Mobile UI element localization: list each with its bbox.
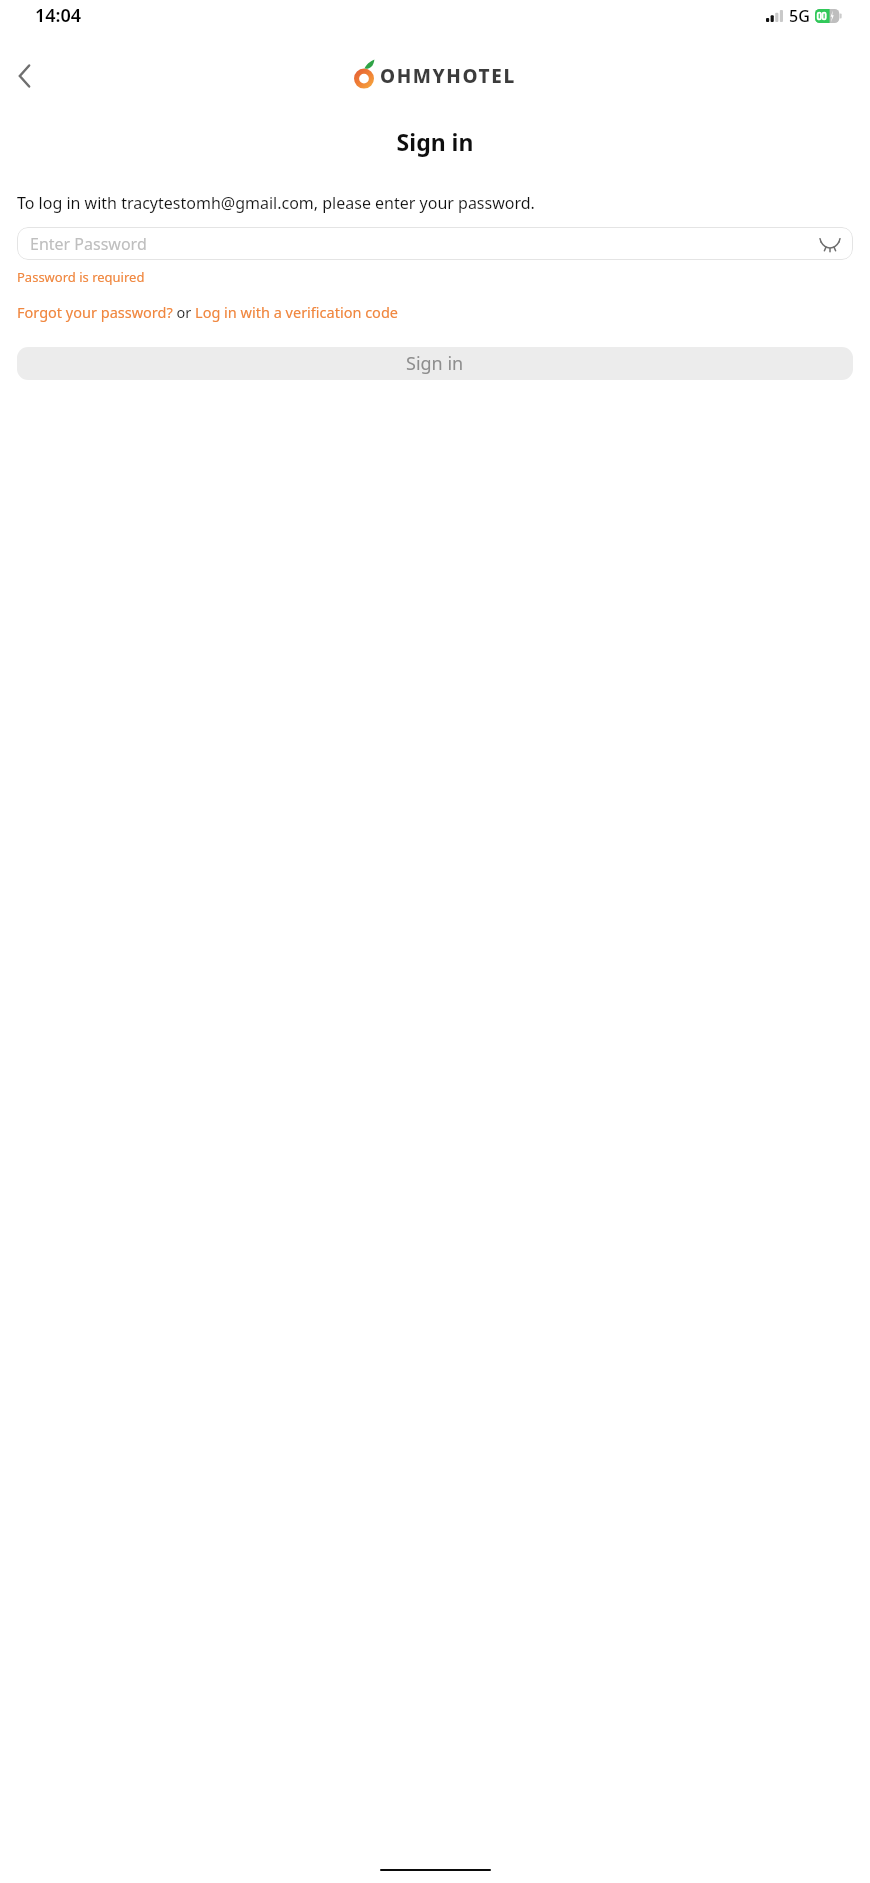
button[interactable]: Back (4, 56, 44, 96)
staticText: OHMYHOTEL (380, 63, 516, 89)
staticText: Sign in (406, 351, 464, 376)
button[interactable]: Forgot your password? or Log in with a v… (17, 302, 398, 322)
staticText: Enter Password (30, 233, 147, 255)
staticText: 5G (789, 5, 810, 27)
staticText: 14:04 (35, 3, 82, 28)
button[interactable]: Show password (815, 229, 845, 259)
staticText: Password is required (17, 268, 145, 286)
staticText: Sign in (0, 126, 870, 157)
staticText: To log in with tracytestomh@gmail.com, p… (17, 192, 535, 214)
button[interactable]: Sign in (17, 347, 853, 380)
button[interactable]: Enter Password (17, 227, 853, 260)
